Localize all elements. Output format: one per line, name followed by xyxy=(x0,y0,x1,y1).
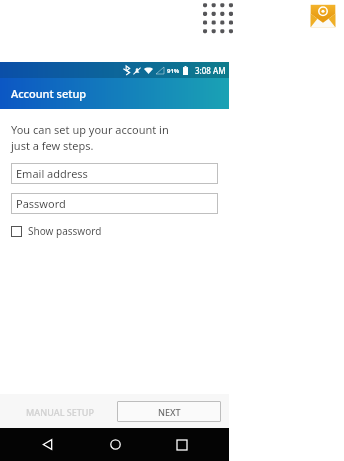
button[interactable]: NEXT xyxy=(117,401,221,422)
staticText: NEXT xyxy=(158,406,181,418)
staticText: Account setup xyxy=(11,86,87,101)
button[interactable]: MANUAL SETUP xyxy=(8,402,111,422)
button[interactable]: Apps xyxy=(203,2,233,32)
button[interactable]: Email address xyxy=(11,163,218,184)
button[interactable]: Email xyxy=(309,2,337,30)
button[interactable]: Password xyxy=(11,193,218,214)
button[interactable]: Recent apps xyxy=(162,428,202,461)
staticText: Show password xyxy=(28,224,102,238)
staticText: You can set up your account in just a fe… xyxy=(11,122,169,153)
staticText: 3:08 AM xyxy=(195,65,226,76)
button[interactable]: Home xyxy=(95,428,135,461)
staticText: Email address xyxy=(16,166,88,181)
staticText: MANUAL SETUP xyxy=(26,406,94,418)
button[interactable]: Back xyxy=(27,428,67,461)
staticText: 91% xyxy=(167,67,180,75)
button[interactable]: Show password xyxy=(11,222,102,240)
staticText: Password xyxy=(16,196,66,211)
